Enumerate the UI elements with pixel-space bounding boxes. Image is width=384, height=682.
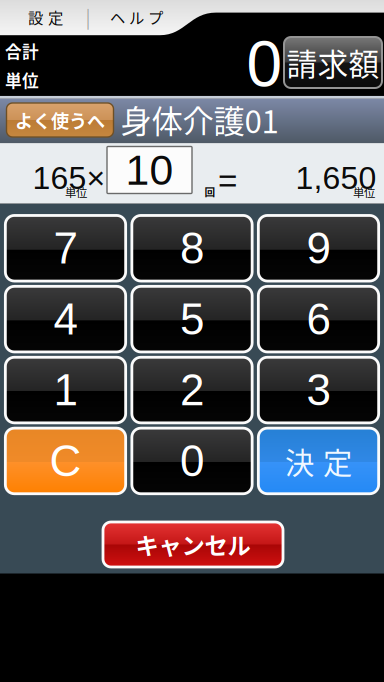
staticText: 0	[180, 436, 204, 486]
button[interactable]: 5	[132, 286, 252, 352]
staticText: 身体介護01	[120, 97, 278, 142]
button[interactable]: 0	[132, 428, 252, 494]
button[interactable]: ヘルプ	[96, 2, 176, 32]
staticText: 5	[180, 295, 204, 344]
staticText: 単位	[353, 184, 375, 200]
button[interactable]: 決定	[258, 428, 379, 494]
staticText: 回	[204, 184, 215, 199]
staticText: 1	[53, 365, 77, 415]
staticText: 4	[53, 295, 77, 344]
staticText: 設定	[28, 6, 63, 28]
staticText: 10	[125, 146, 173, 194]
staticText: 0	[246, 28, 282, 100]
button[interactable]: 2	[132, 357, 252, 423]
staticText: |	[85, 3, 90, 30]
button[interactable]: 3	[258, 357, 379, 423]
button[interactable]: C	[5, 428, 126, 494]
staticText: 請求額	[286, 40, 379, 85]
staticText: 1,650	[295, 160, 376, 196]
staticText: 単位	[5, 68, 39, 92]
staticText: ヘルプ	[110, 6, 163, 28]
staticText: キャンセル	[135, 528, 250, 561]
button[interactable]: 1	[5, 357, 126, 423]
button[interactable]: 8	[132, 215, 252, 281]
button[interactable]: キャンセル	[103, 522, 283, 567]
staticText: C	[49, 436, 81, 486]
staticText: 6	[306, 295, 330, 344]
staticText: 決定	[285, 440, 352, 482]
button[interactable]: よく使うへ	[6, 103, 113, 137]
staticText: 7	[53, 224, 77, 273]
staticText: 単位	[65, 184, 87, 200]
button[interactable]: 4	[5, 286, 126, 352]
button[interactable]: 10	[107, 146, 192, 193]
staticText: 8	[180, 224, 204, 273]
staticText: 合計	[5, 39, 39, 63]
staticText: 2	[180, 365, 204, 415]
staticText: =	[218, 162, 237, 200]
button[interactable]: 6	[258, 286, 379, 352]
button[interactable]: 設定	[7, 2, 83, 32]
staticText: 9	[306, 224, 330, 273]
button[interactable]: 7	[5, 215, 126, 281]
button[interactable]: 請求額	[284, 37, 382, 88]
staticText: 3	[306, 365, 330, 415]
staticText: 165×	[32, 160, 105, 196]
staticText: よく使うへ	[15, 107, 105, 133]
button[interactable]: 9	[258, 215, 379, 281]
